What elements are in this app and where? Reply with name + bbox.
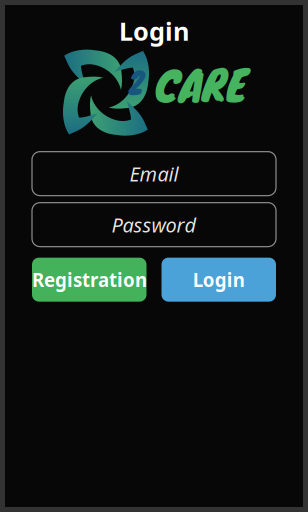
staticText: Login xyxy=(193,267,245,292)
staticText: Password xyxy=(111,211,196,238)
staticText: 2 xyxy=(129,62,144,103)
staticText: Login xyxy=(119,14,189,48)
staticText: Registration xyxy=(32,267,146,292)
button[interactable]: Email xyxy=(32,152,276,196)
staticText: CARE xyxy=(155,52,248,116)
button[interactable]: Registration xyxy=(32,258,146,302)
button[interactable]: Password xyxy=(32,203,276,247)
button[interactable]: Login xyxy=(161,258,276,302)
staticText: Email xyxy=(129,160,178,187)
